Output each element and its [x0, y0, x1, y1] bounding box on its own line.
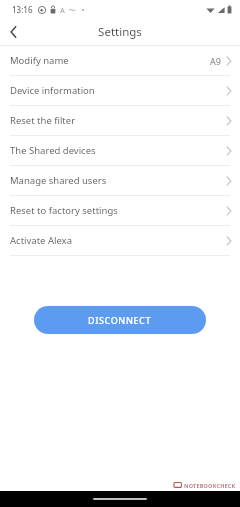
staticText: The Shared devices	[10, 144, 96, 157]
staticText: Reset to factory settings	[10, 204, 118, 217]
button[interactable]: Device information	[0, 76, 240, 105]
button[interactable]: Back	[0, 18, 27, 45]
button[interactable]: DISCONNECT	[34, 306, 206, 334]
staticText: Modify name	[10, 54, 69, 67]
button[interactable]: Reset the filter	[0, 106, 240, 135]
staticText: 13:16	[12, 4, 33, 15]
staticText: A	[60, 5, 65, 15]
button[interactable]: Reset to factory settings	[0, 196, 240, 225]
button[interactable]: Activate Alexa	[0, 226, 240, 255]
button[interactable]: The Shared devices	[0, 136, 240, 165]
staticText: DISCONNECT	[88, 314, 152, 326]
staticText: NOTEBOOKCHECK	[184, 482, 236, 489]
staticText: Manage shared users	[10, 174, 107, 187]
staticText: Device information	[10, 84, 95, 97]
button[interactable]: Manage shared users	[0, 166, 240, 195]
staticText: Reset the filter	[10, 114, 76, 127]
staticText: A9	[210, 55, 221, 67]
staticText: Settings	[98, 24, 142, 40]
other: Home gesture	[93, 498, 147, 500]
staticText: Activate Alexa	[10, 234, 72, 247]
button[interactable]: Modify name	[0, 46, 240, 75]
